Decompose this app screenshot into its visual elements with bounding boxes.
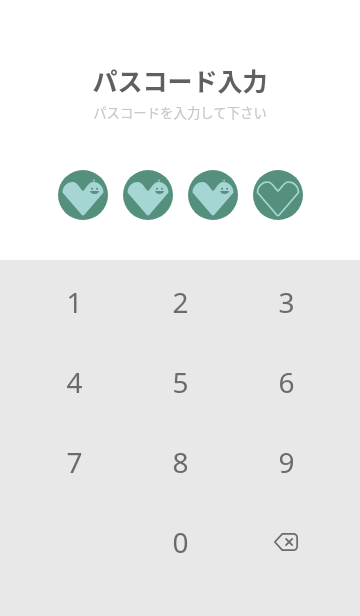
staticText: 7 [66, 443, 83, 481]
staticText: 6 [278, 363, 295, 401]
staticText: パスコードを入力して下さい [93, 102, 267, 121]
button[interactable]: 3 [233, 262, 339, 342]
button[interactable]: 4 [21, 342, 127, 422]
button[interactable]: 8 [127, 422, 233, 502]
button[interactable]: 7 [21, 422, 127, 502]
button[interactable]: 6 [233, 342, 339, 422]
button[interactable]: 0 [127, 502, 233, 582]
staticText: 0 [172, 523, 189, 561]
button[interactable]: 2 [127, 262, 233, 342]
staticText: 2 [172, 283, 189, 321]
staticText: パスコード入力 [92, 62, 268, 98]
staticText: 4 [66, 363, 83, 401]
button[interactable]: 5 [127, 342, 233, 422]
staticText: 3 [278, 283, 295, 321]
button[interactable]: 9 [233, 422, 339, 502]
button[interactable]: Backspace [233, 502, 339, 582]
staticText: 5 [172, 363, 189, 401]
button[interactable]: 1 [21, 262, 127, 342]
staticText: 1 [66, 283, 83, 321]
staticText: 8 [172, 443, 189, 481]
staticText: 9 [278, 443, 295, 481]
